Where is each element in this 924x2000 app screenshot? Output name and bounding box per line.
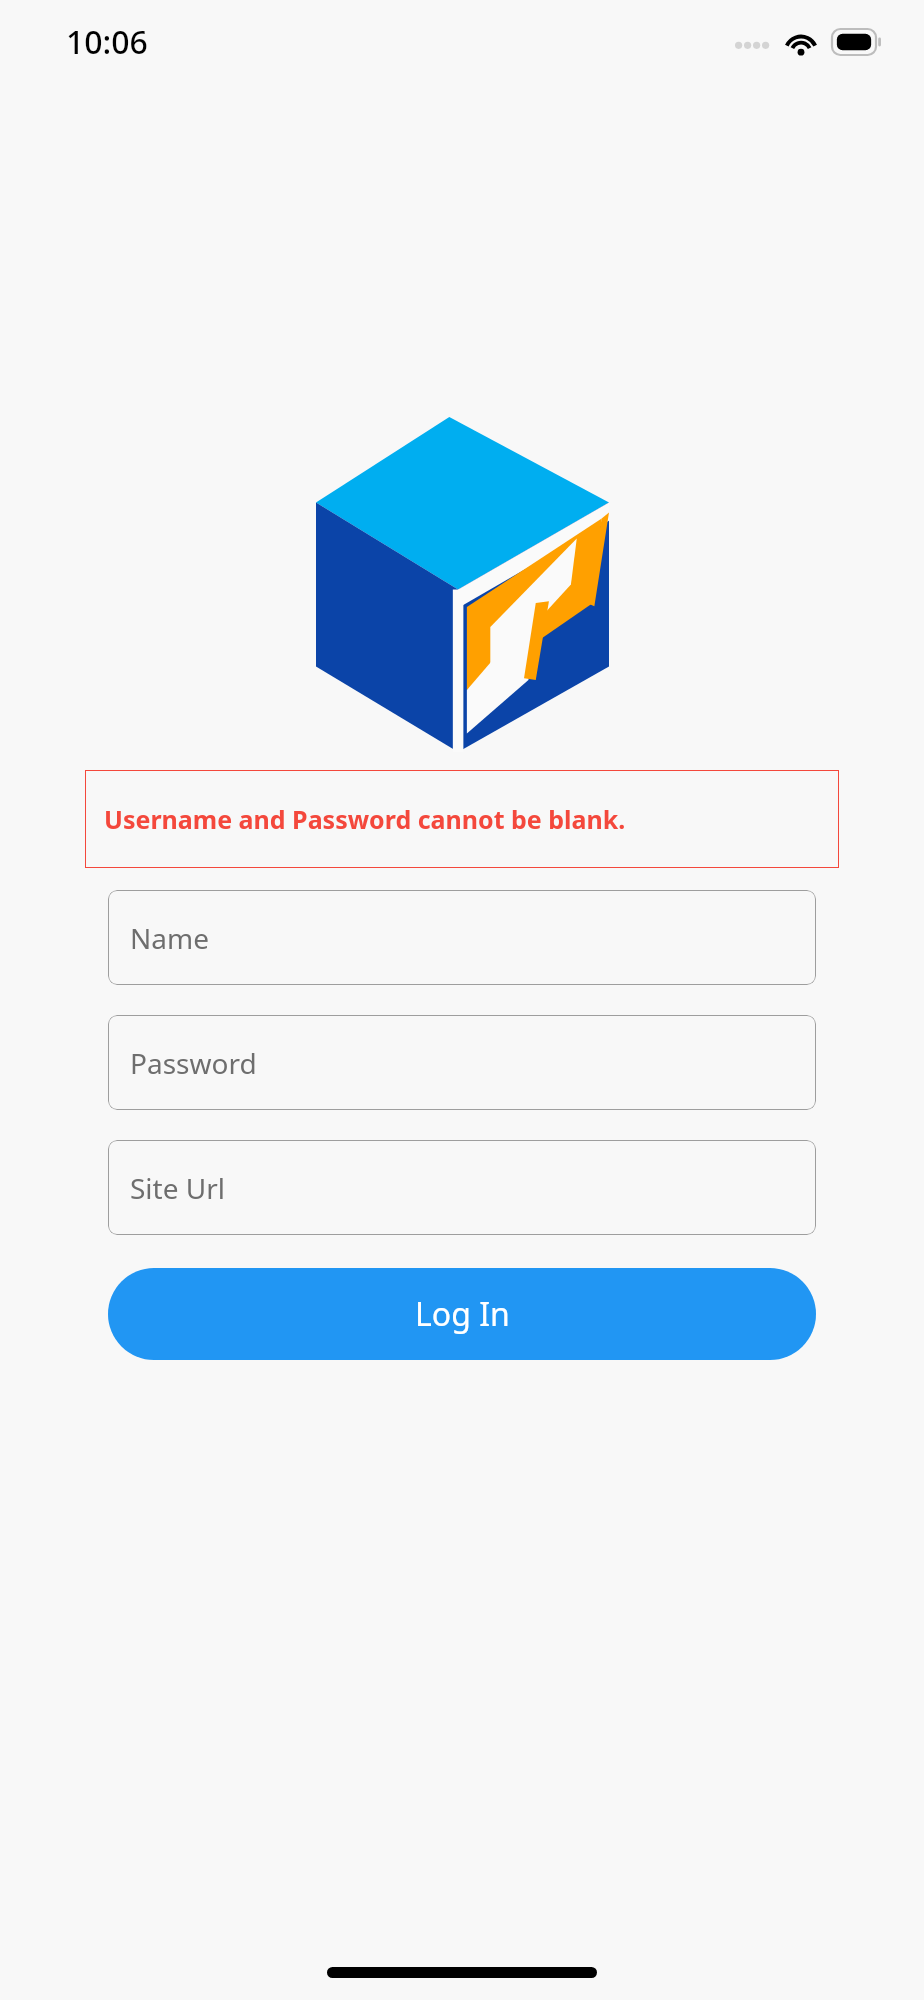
button[interactable]: Log In bbox=[108, 1268, 816, 1360]
staticText: Name bbox=[130, 919, 209, 957]
button[interactable]: Name bbox=[108, 890, 816, 985]
staticText: Password bbox=[130, 1044, 257, 1082]
staticText: 10:06 bbox=[66, 20, 148, 64]
button[interactable]: Site Url bbox=[108, 1140, 816, 1235]
staticText: Log In bbox=[415, 1292, 510, 1336]
button[interactable]: Username and Password cannot be blank. bbox=[85, 770, 839, 868]
button[interactable]: Password bbox=[108, 1015, 816, 1110]
staticText: Username and Password cannot be blank. bbox=[104, 802, 626, 836]
staticText: Site Url bbox=[130, 1169, 226, 1207]
